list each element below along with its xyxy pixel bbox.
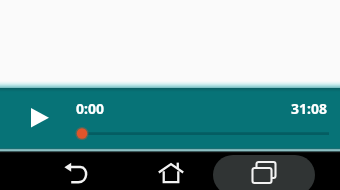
button[interactable]: Play (21, 99, 59, 137)
staticText: 31:08 (291, 99, 327, 118)
button[interactable]: Back (62, 159, 90, 185)
button[interactable]: Home (157, 159, 185, 185)
staticText: 0:00 (76, 99, 104, 118)
button[interactable]: Recent apps (250, 159, 278, 185)
button[interactable]: Seek position (60, 124, 335, 144)
